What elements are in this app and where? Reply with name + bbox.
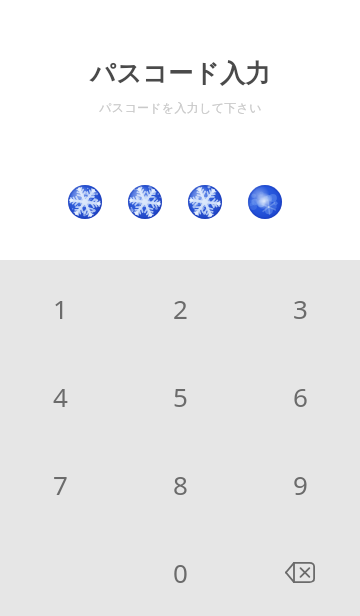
button[interactable]: 7	[0, 440, 120, 528]
staticText: 7	[53, 467, 68, 502]
button[interactable]: 2	[120, 264, 240, 352]
staticText: 5	[173, 379, 188, 414]
staticText: 9	[293, 467, 308, 502]
button[interactable]: 3	[240, 264, 360, 352]
staticText: 4	[53, 379, 68, 414]
staticText: 0	[173, 555, 188, 590]
button[interactable]: 1	[0, 264, 120, 352]
staticText: パスコードを入力して下さい	[99, 100, 262, 115]
staticText: 1	[53, 291, 68, 326]
staticText: 6	[293, 379, 308, 414]
button[interactable]: 4	[0, 352, 120, 440]
button[interactable]: 8	[120, 440, 240, 528]
staticText: パスコード入力	[90, 58, 271, 89]
button[interactable]: 0	[120, 528, 240, 616]
staticText: 3	[293, 291, 308, 326]
staticText: 8	[173, 467, 188, 502]
staticText: 2	[173, 291, 188, 326]
button[interactable]: 9	[240, 440, 360, 528]
button[interactable]: 5	[120, 352, 240, 440]
button[interactable]: Backspace	[240, 528, 360, 616]
button[interactable]: 6	[240, 352, 360, 440]
